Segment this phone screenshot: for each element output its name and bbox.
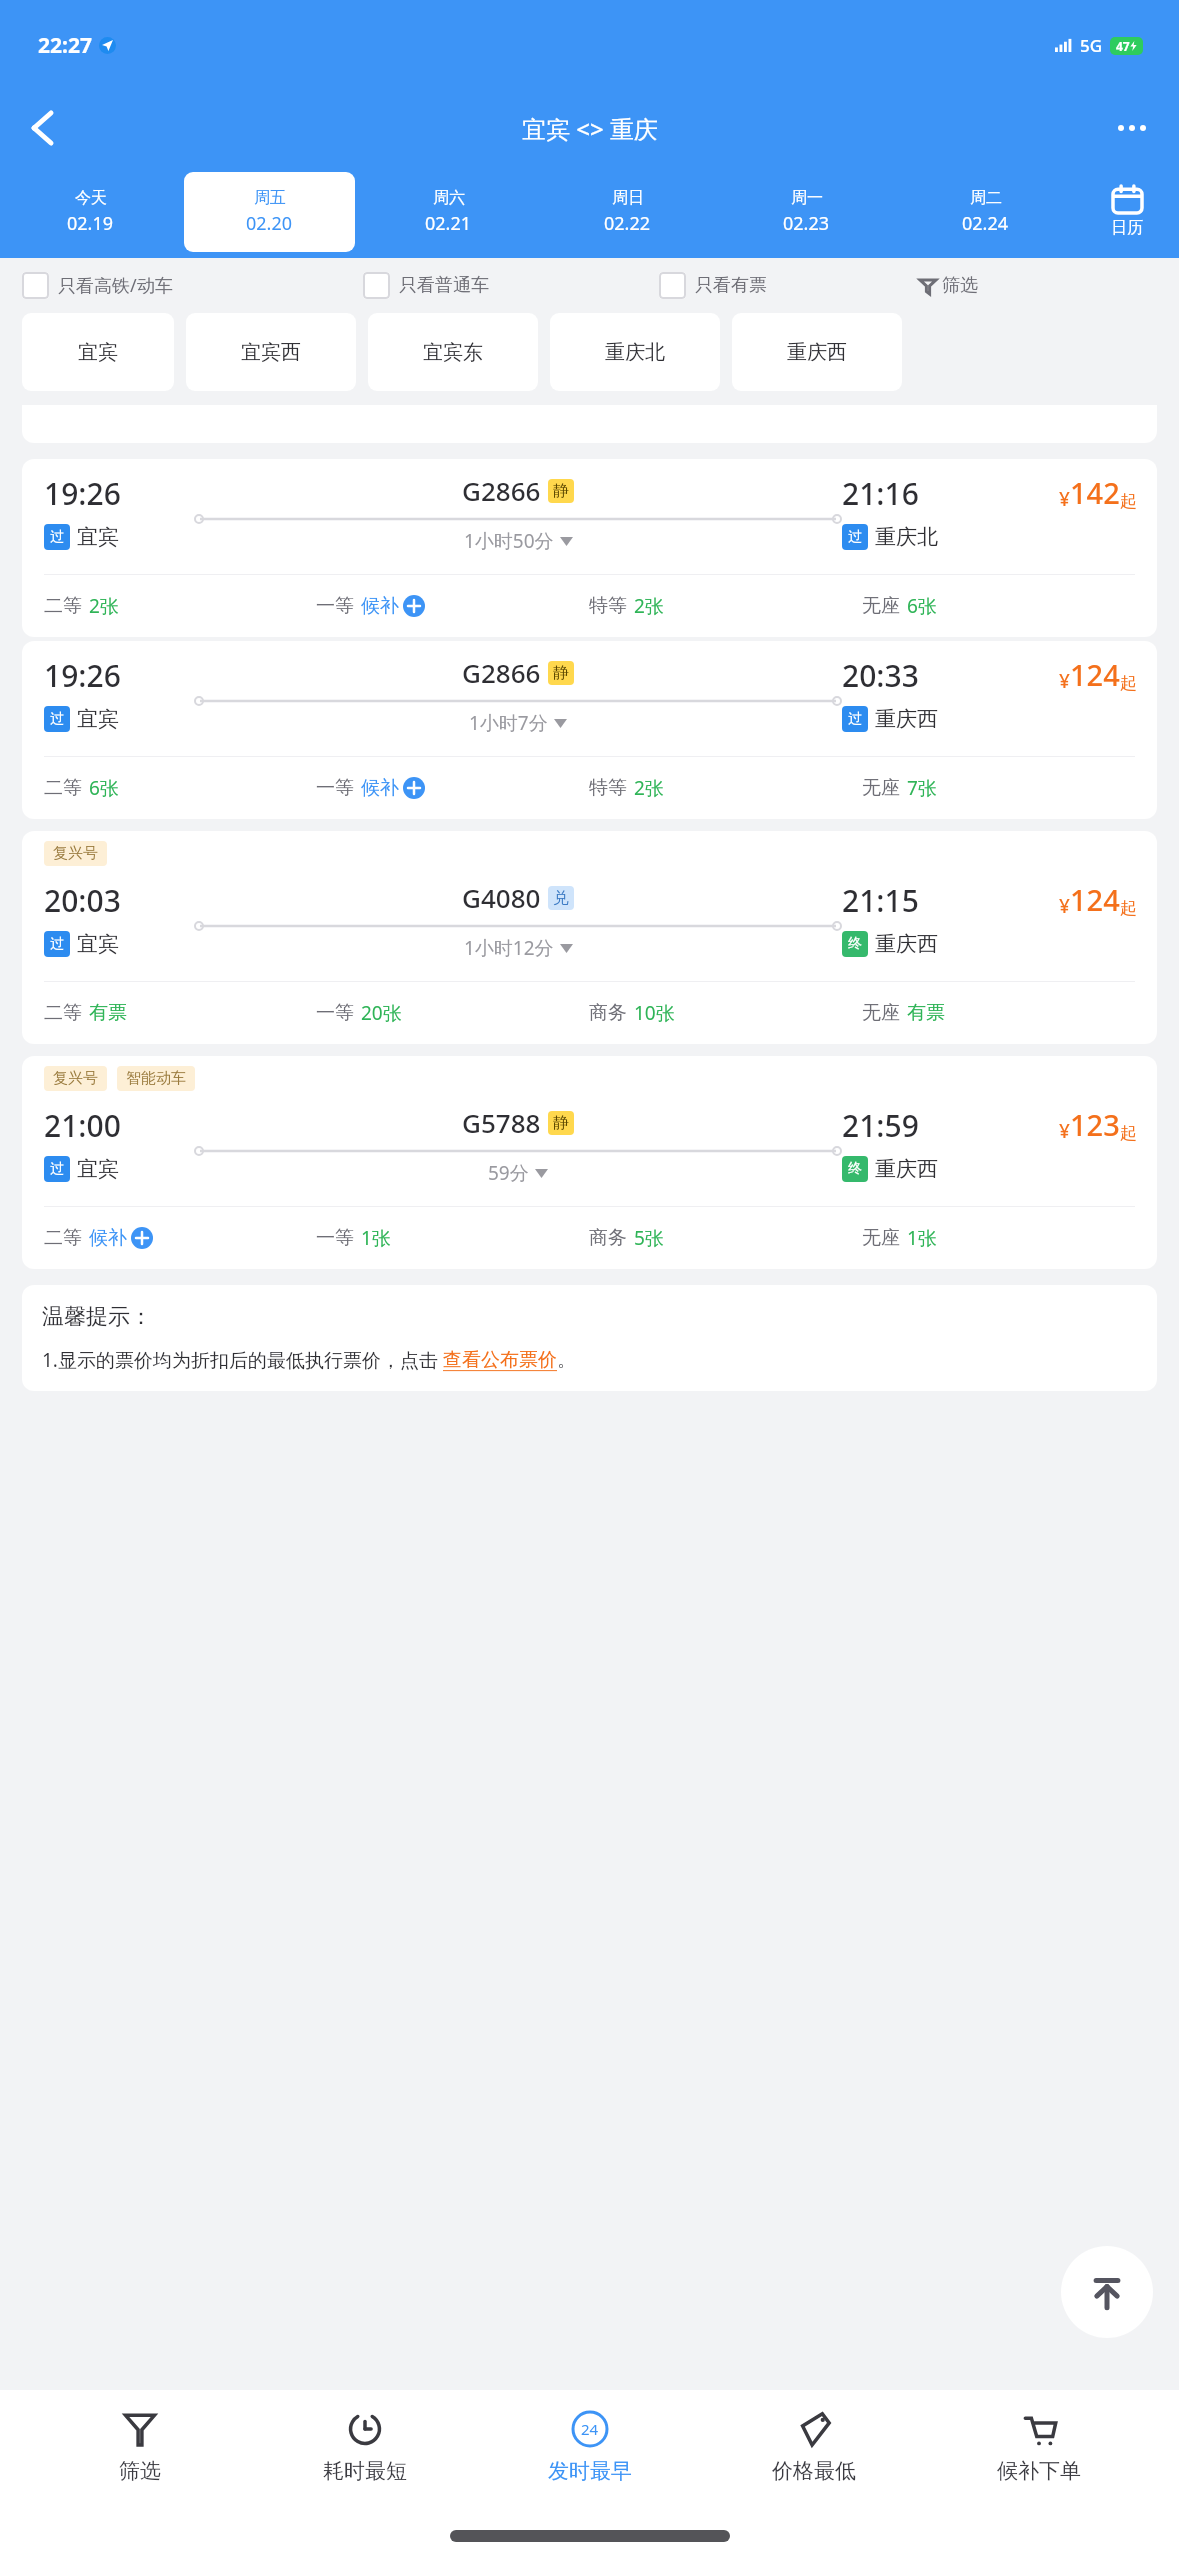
staticText: 6张: [907, 593, 937, 619]
staticText: 有票: [89, 1001, 127, 1025]
button[interactable]: 宜宾东: [368, 313, 538, 391]
staticText: 20:33: [842, 655, 919, 696]
staticText: 19:26: [44, 473, 121, 514]
staticText: 21:15: [842, 880, 919, 921]
staticText: 123: [1070, 1105, 1120, 1144]
button[interactable]: 19:26: [22, 459, 1157, 637]
button[interactable]: 价格最低: [729, 2410, 899, 2484]
staticText: 过: [50, 935, 64, 953]
staticText: 商务: [589, 1226, 627, 1250]
button[interactable]: 19:26: [22, 641, 1157, 819]
staticText: ¥: [1059, 668, 1070, 694]
staticText: 周二: [970, 188, 1002, 208]
staticText: 1张: [361, 1225, 391, 1251]
staticText: 筛选: [942, 274, 978, 297]
staticText: 1小时50分: [464, 528, 554, 554]
button[interactable]: 周六: [363, 172, 534, 252]
staticText: 过: [50, 528, 64, 546]
button[interactable]: 周五: [184, 172, 355, 252]
button[interactable]: 只看高铁/动车: [22, 272, 363, 299]
staticText: 21:16: [842, 473, 919, 514]
staticText: 宜宾: [77, 524, 119, 550]
button[interactable]: 重庆西: [732, 313, 902, 391]
staticText: 候补: [361, 594, 399, 618]
button[interactable]: 周二: [900, 172, 1071, 252]
staticText: 二等: [44, 776, 82, 800]
staticText: 10张: [634, 1000, 675, 1026]
staticText: 重庆西: [875, 1156, 938, 1182]
staticText: 2张: [89, 593, 119, 619]
staticText: ¥: [1059, 486, 1070, 512]
button[interactable]: 复兴号: [22, 1056, 1157, 1269]
button[interactable]: 候补下单: [954, 2410, 1124, 2484]
staticText: 候补: [89, 1226, 127, 1250]
button[interactable]: 重庆北: [550, 313, 720, 391]
staticText: 无座: [862, 1001, 900, 1025]
button[interactable]: 筛选: [920, 274, 1157, 297]
staticText: 特等: [589, 776, 627, 800]
button[interactable]: 筛选: [55, 2410, 225, 2484]
button[interactable]: 耗时最短: [280, 2410, 450, 2484]
staticText: 兑: [553, 888, 569, 908]
button[interactable]: 周日: [542, 172, 713, 252]
staticText: 宜宾: [77, 1156, 119, 1182]
button[interactable]: Scroll to top: [1061, 2246, 1153, 2338]
staticText: 重庆北: [875, 524, 938, 550]
staticText: 周五: [254, 188, 286, 208]
staticText: 温馨提示：: [42, 1303, 152, 1331]
button[interactable]: 复兴号: [22, 831, 1157, 1044]
staticText: 日历: [1111, 218, 1143, 238]
staticText: 只看高铁/动车: [58, 273, 173, 298]
staticText: 过: [50, 1160, 64, 1178]
staticText: G4080: [462, 880, 541, 915]
staticText: 商务: [589, 1001, 627, 1025]
staticText: 终: [848, 935, 862, 953]
button[interactable]: 今天: [4, 172, 176, 252]
staticText: 特等: [589, 594, 627, 618]
staticText: 1张: [907, 1225, 937, 1251]
staticText: 今天: [75, 188, 107, 208]
staticText: 二等: [44, 1226, 82, 1250]
staticText: 起: [1120, 673, 1137, 694]
button[interactable]: 日历: [1075, 166, 1179, 258]
staticText: 周一: [791, 188, 823, 208]
button[interactable]: 查看公布票价: [443, 1348, 557, 1372]
staticText: 124: [1070, 655, 1120, 694]
staticText: 过: [50, 710, 64, 728]
button[interactable]: 只看普通车: [363, 272, 659, 299]
staticText: 候补下单: [997, 2458, 1081, 2484]
button[interactable]: 只看有票: [659, 272, 920, 299]
staticText: 5G: [1080, 34, 1103, 57]
staticText: 周日: [612, 188, 644, 208]
staticText: 重庆西: [875, 931, 938, 957]
staticText: 1小时12分: [464, 935, 554, 961]
staticText: 21:00: [44, 1105, 121, 1146]
button[interactable]: Back: [14, 100, 70, 156]
staticText: 24: [581, 2419, 599, 2439]
staticText: 终: [848, 1160, 862, 1178]
staticText: 1.显示的票价均为折扣后的最低执行票价，点击: [42, 1347, 443, 1373]
staticText: 02.23: [783, 211, 830, 236]
staticText: 静: [553, 1113, 569, 1133]
staticText: 19:26: [44, 655, 121, 696]
button[interactable]: 周一: [721, 172, 892, 252]
button[interactable]: 宜宾: [22, 313, 174, 391]
staticText: 02.20: [246, 211, 293, 236]
staticText: 一等: [316, 1001, 354, 1025]
staticText: 无座: [862, 1226, 900, 1250]
staticText: 5张: [634, 1225, 664, 1251]
staticText: 只看普通车: [399, 274, 489, 297]
staticText: 59分: [488, 1160, 529, 1186]
staticText: 一等: [316, 1226, 354, 1250]
button[interactable]: 宜宾西: [186, 313, 356, 391]
staticText: 20:03: [44, 880, 121, 921]
staticText: 候补: [361, 776, 399, 800]
button[interactable]: 24: [505, 2410, 675, 2484]
staticText: 22:27: [38, 31, 92, 60]
button[interactable]: More options: [1107, 103, 1157, 153]
staticText: 耗时最短: [323, 2458, 407, 2484]
staticText: 20张: [361, 1000, 402, 1026]
staticText: 宜宾: [77, 931, 119, 957]
staticText: 重庆西: [875, 706, 938, 732]
staticText: 02.21: [425, 211, 472, 236]
